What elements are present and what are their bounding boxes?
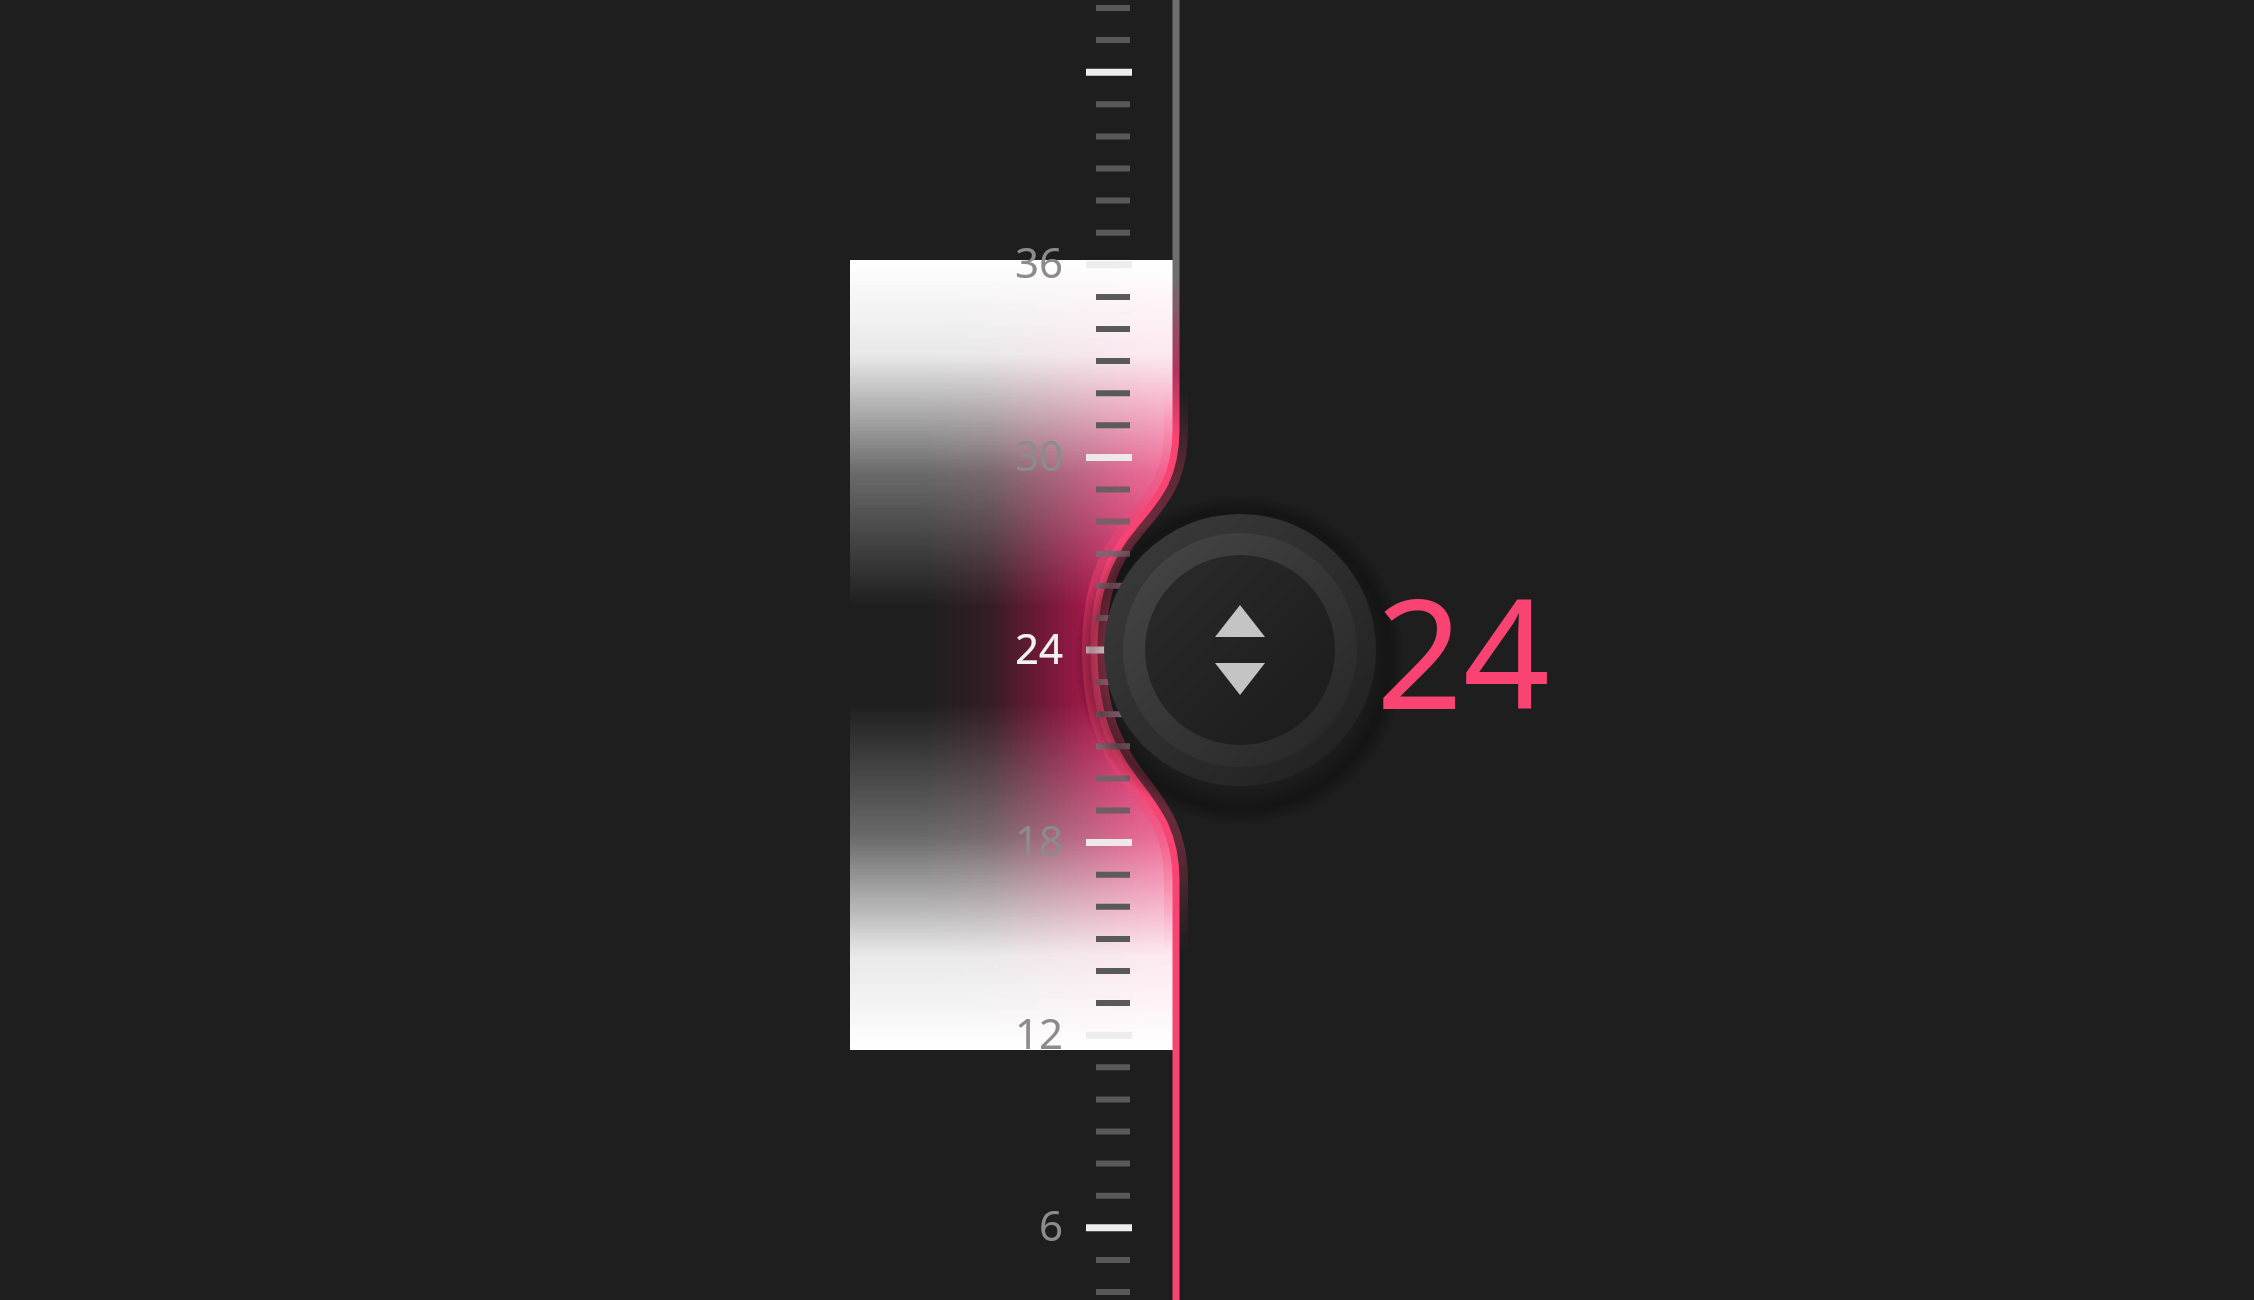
button[interactable]: Temperature slider, value 24	[0, 0, 2254, 1300]
